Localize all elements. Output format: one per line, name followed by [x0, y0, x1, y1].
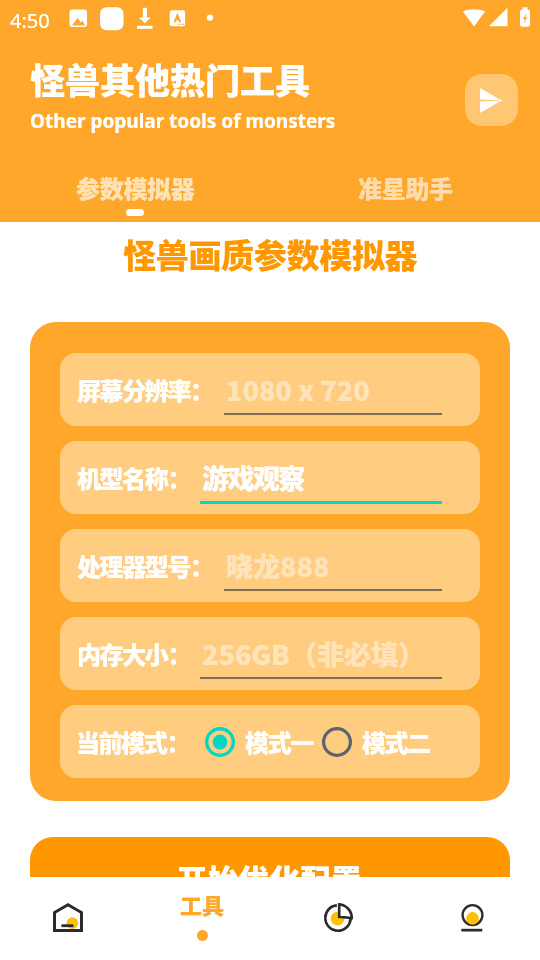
button[interactable]: 机型名称： [60, 441, 480, 514]
staticText: 4:50 [10, 7, 50, 34]
staticText: 处理器型号： [77, 548, 213, 583]
staticText: 晓龙888 [226, 546, 330, 585]
staticText: 内存大小： [77, 636, 190, 671]
button[interactable]: 模式一 [205, 724, 313, 759]
button[interactable]: 准星助手 [270, 170, 540, 209]
button[interactable]: 工具 [135, 877, 270, 960]
button[interactable]: 处理器型号： [60, 529, 480, 602]
staticText: 怪兽其他热门工具 [30, 53, 311, 104]
button[interactable]: 我的 [405, 877, 540, 960]
button[interactable]: Google Play [465, 74, 518, 126]
staticText: 准星助手 [358, 170, 453, 205]
staticText: 参数模拟器 [76, 170, 195, 205]
staticText: 模式二 [362, 724, 430, 759]
staticText: Other popular tools of monsters [30, 108, 336, 134]
staticText: 游戏观察 [202, 458, 304, 497]
staticText: 开始优化配置 [177, 856, 363, 899]
staticText: 怪兽画质参数模拟器 [123, 230, 418, 278]
staticText: 1080 x 720 [226, 370, 370, 409]
button[interactable]: 首页 [0, 877, 135, 960]
button[interactable]: 统计 [270, 877, 405, 960]
staticText: 工具 [180, 888, 225, 920]
button[interactable]: 内存大小： [60, 617, 480, 690]
staticText: 屏幕分辨率： [77, 372, 213, 407]
button[interactable]: 参数模拟器 [0, 170, 270, 216]
button[interactable]: 模式二 [322, 724, 430, 759]
staticText: 机型名称： [77, 460, 190, 495]
staticText: 256GB（非必填） [202, 634, 425, 673]
button[interactable]: 屏幕分辨率： [60, 353, 480, 426]
staticText: 模式一 [245, 724, 313, 759]
button[interactable]: 开始优化配置 [30, 837, 510, 917]
staticText: 当前模式： [76, 724, 189, 759]
